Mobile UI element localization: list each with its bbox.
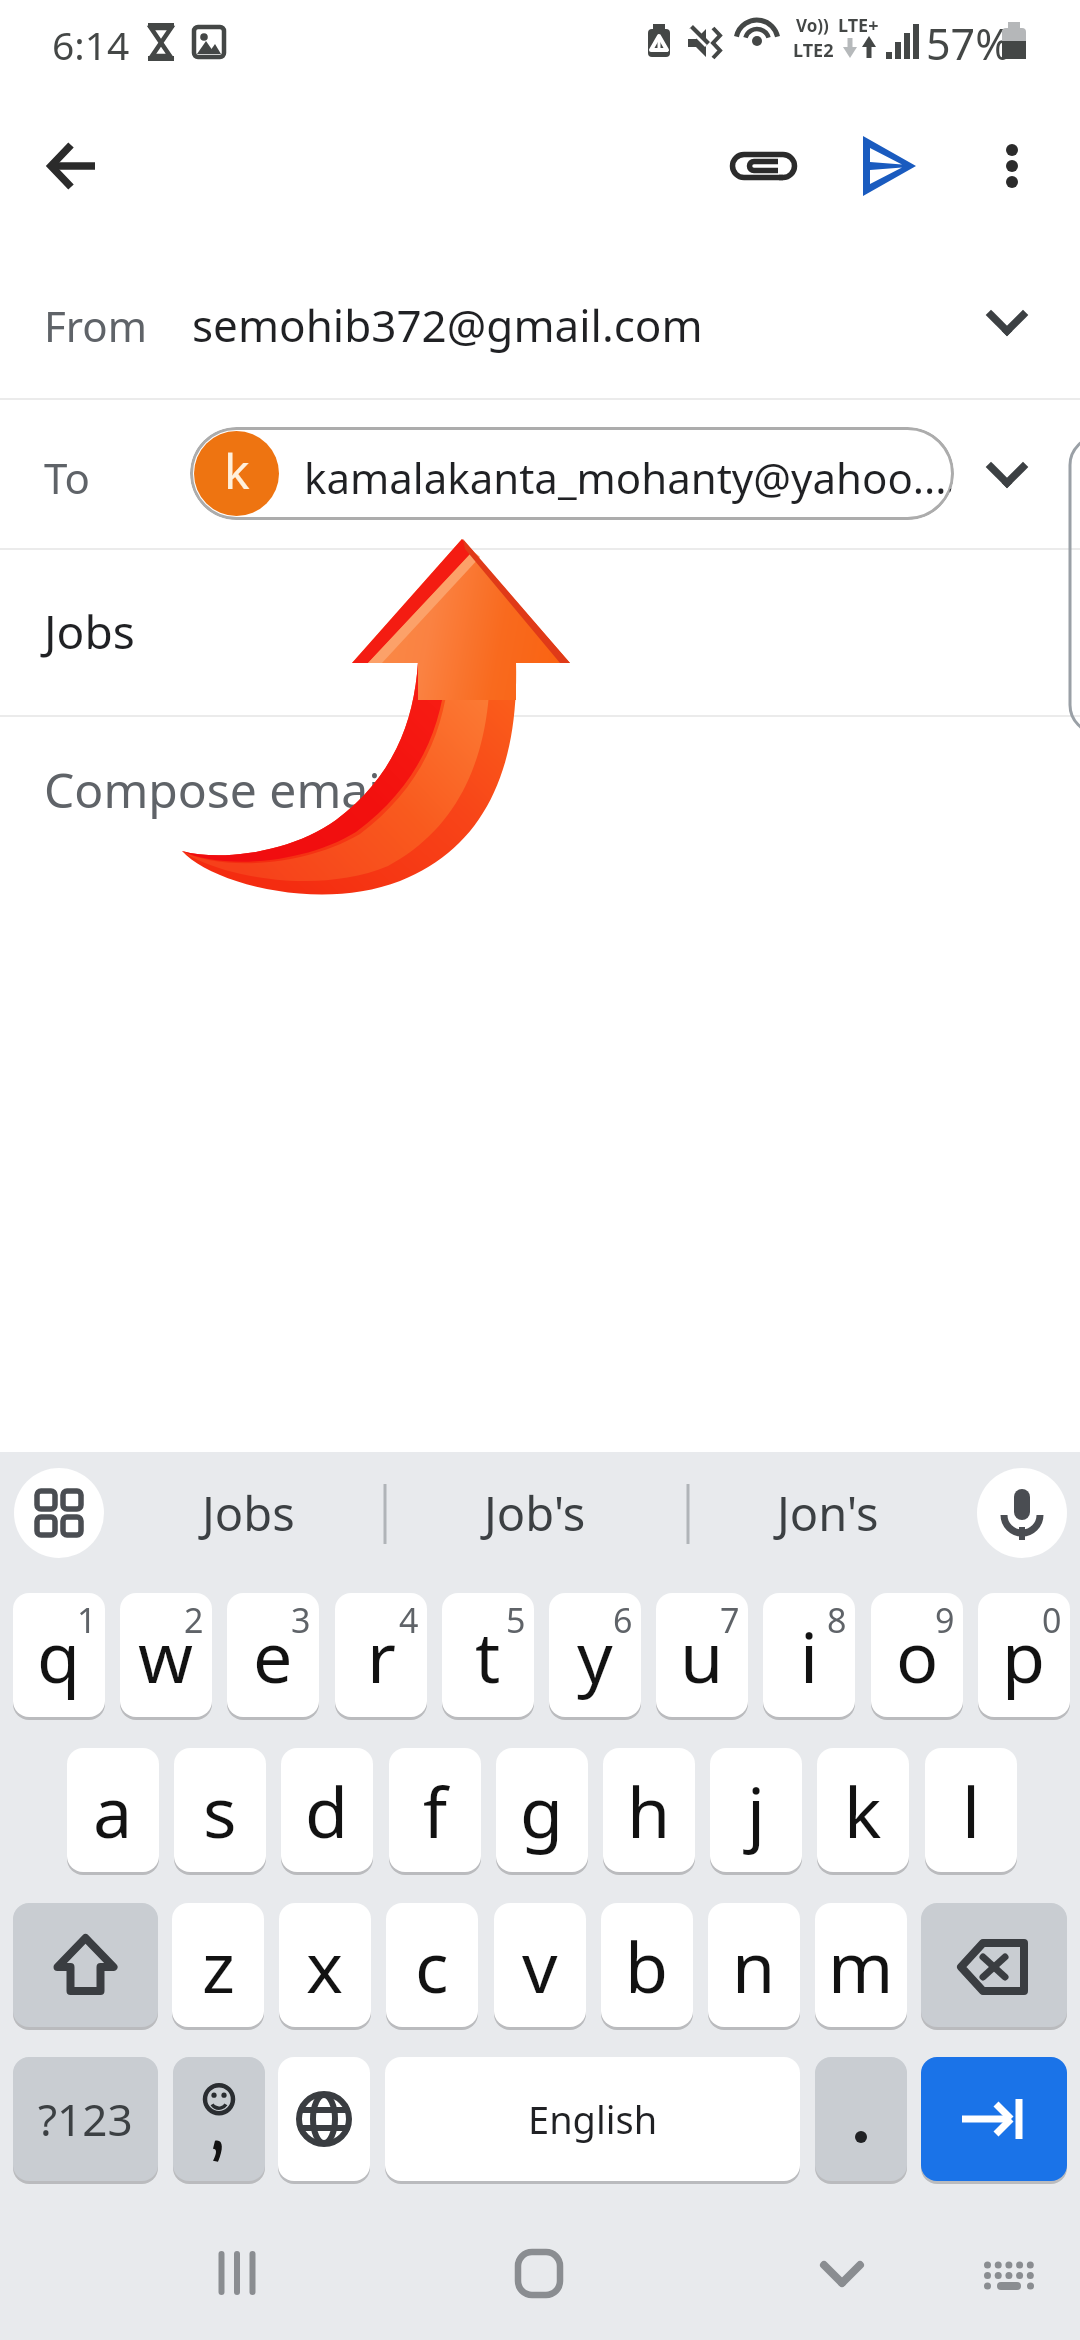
- button[interactable]: x: [279, 1903, 371, 2027]
- button[interactable]: c: [386, 1903, 478, 2027]
- button[interactable]: y: [549, 1593, 641, 1717]
- staticText: kamalakanta_mohanty@yahoo....: [304, 449, 954, 506]
- staticText: t: [475, 1608, 501, 1703]
- button[interactable]: Jon's: [698, 1468, 958, 1558]
- button[interactable]: o: [871, 1593, 963, 1717]
- button[interactable]: From: [0, 268, 1080, 398]
- button[interactable]: l: [925, 1748, 1017, 1872]
- staticText: z: [202, 1918, 235, 2013]
- button[interactable]: g: [496, 1748, 588, 1872]
- button[interactable]: a: [67, 1748, 159, 1872]
- button[interactable]: Jobs: [118, 1468, 378, 1558]
- staticText: 6:14: [52, 18, 130, 71]
- staticText: From: [44, 297, 147, 354]
- button[interactable]: d: [281, 1748, 373, 1872]
- staticText: u: [680, 1608, 724, 1703]
- button[interactable]: t: [442, 1593, 534, 1717]
- button[interactable]: [815, 2057, 907, 2181]
- staticText: 9: [935, 1597, 955, 1643]
- button[interactable]: Attach file: [718, 120, 810, 212]
- staticText: 8: [827, 1597, 847, 1643]
- button[interactable]: w: [120, 1593, 212, 1717]
- staticText: v: [522, 1918, 558, 2013]
- button[interactable]: English: [385, 2057, 800, 2181]
- button[interactable]: m: [815, 1903, 907, 2027]
- button[interactable]: b: [601, 1903, 693, 2027]
- button[interactable]: [173, 2057, 265, 2181]
- staticText: p: [1002, 1608, 1046, 1703]
- button[interactable]: Compose email: [0, 717, 1080, 917]
- button[interactable]: i: [763, 1593, 855, 1717]
- button[interactable]: e: [227, 1593, 319, 1717]
- button[interactable]: z: [172, 1903, 264, 2027]
- staticText: k: [844, 1763, 882, 1858]
- staticText: To: [44, 449, 90, 506]
- button[interactable]: Back: [27, 120, 119, 212]
- staticText: m: [828, 1918, 894, 2013]
- staticText: ?123: [38, 2089, 133, 2149]
- staticText: 5: [506, 1597, 526, 1643]
- staticText: 1: [77, 1597, 97, 1643]
- button[interactable]: Toolbar: [14, 1468, 104, 1558]
- button[interactable]: u: [656, 1593, 748, 1717]
- button[interactable]: s: [174, 1748, 266, 1872]
- button[interactable]: To: [0, 400, 1080, 548]
- button[interactable]: j: [710, 1748, 802, 1872]
- staticText: 6: [613, 1597, 633, 1643]
- button[interactable]: Change keyboard: [959, 2224, 1059, 2324]
- button[interactable]: [921, 2057, 1067, 2181]
- button[interactable]: ?123: [13, 2057, 158, 2181]
- button[interactable]: [278, 2057, 370, 2181]
- staticText: r: [367, 1608, 396, 1703]
- staticText: a: [93, 1763, 133, 1858]
- staticText: LTE+: [838, 13, 879, 38]
- button[interactable]: Job's: [405, 1468, 665, 1558]
- staticText: 4: [399, 1597, 419, 1643]
- staticText: h: [627, 1763, 671, 1858]
- staticText: Vo)): [796, 14, 829, 37]
- staticText: Jon's: [777, 1481, 879, 1545]
- staticText: Job's: [484, 1481, 586, 1545]
- staticText: l: [962, 1763, 981, 1858]
- staticText: x: [306, 1918, 344, 2013]
- button[interactable]: [921, 1903, 1067, 2027]
- staticText: 7: [720, 1597, 740, 1643]
- staticText: i: [800, 1608, 819, 1703]
- staticText: Jobs: [44, 600, 135, 663]
- staticText: s: [203, 1763, 237, 1858]
- button[interactable]: [13, 1903, 158, 2027]
- staticText: e: [253, 1608, 293, 1703]
- button[interactable]: f: [389, 1748, 481, 1872]
- staticText: 2: [184, 1597, 204, 1643]
- button[interactable]: v: [494, 1903, 586, 2027]
- button[interactable]: q: [13, 1593, 105, 1717]
- staticText: b: [625, 1918, 669, 2013]
- staticText: English: [528, 2093, 658, 2145]
- staticText: n: [732, 1918, 776, 2013]
- staticText: 0: [1042, 1597, 1062, 1643]
- button[interactable]: k: [817, 1748, 909, 1872]
- button[interactable]: Send: [842, 120, 934, 212]
- staticText: semohib372@gmail.com: [192, 295, 703, 355]
- staticText: o: [896, 1608, 939, 1703]
- button[interactable]: n: [708, 1903, 800, 2027]
- staticText: f: [423, 1763, 448, 1858]
- button[interactable]: r: [335, 1593, 427, 1717]
- staticText: c: [415, 1918, 449, 2013]
- button[interactable]: More options: [966, 120, 1058, 212]
- button[interactable]: Recent apps: [187, 2224, 287, 2324]
- staticText: y: [577, 1608, 613, 1703]
- button[interactable]: Voice input: [977, 1468, 1067, 1558]
- staticText: d: [305, 1763, 349, 1858]
- button[interactable]: Home: [489, 2224, 589, 2324]
- staticText: g: [520, 1763, 564, 1858]
- staticText: Jobs: [202, 1481, 295, 1545]
- button[interactable]: h: [603, 1748, 695, 1872]
- button[interactable]: p: [978, 1593, 1070, 1717]
- staticText: j: [747, 1763, 766, 1858]
- button[interactable]: Hide keyboard: [792, 2224, 892, 2324]
- staticText: k: [224, 438, 250, 503]
- button[interactable]: Jobs: [0, 550, 1080, 715]
- staticText: 3: [291, 1597, 311, 1643]
- staticText: Compose email: [44, 757, 394, 822]
